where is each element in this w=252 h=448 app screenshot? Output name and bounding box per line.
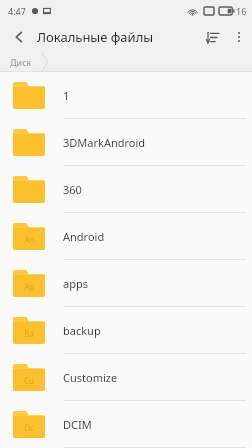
button[interactable]: 360 xyxy=(0,166,252,213)
staticText: 4:47 xyxy=(8,5,26,17)
button[interactable]: Sort xyxy=(198,23,226,51)
button[interactable]: An xyxy=(0,213,252,260)
staticText: 1 xyxy=(63,88,70,103)
button[interactable]: Диск xyxy=(0,52,48,72)
button[interactable]: Ap xyxy=(0,260,252,307)
staticText: Customize xyxy=(63,370,118,385)
button[interactable]: Ba xyxy=(0,307,252,354)
button[interactable]: Back xyxy=(6,24,32,50)
staticText: 360 xyxy=(63,182,82,197)
button[interactable]: Cu xyxy=(0,354,252,401)
staticText: Ba xyxy=(24,328,34,339)
staticText: backup xyxy=(63,323,101,338)
staticText: Локальные файлы xyxy=(37,28,154,46)
staticText: 16 xyxy=(236,5,247,17)
staticText: DCIM xyxy=(63,417,92,432)
button[interactable]: More options xyxy=(226,24,252,50)
button[interactable]: 1 xyxy=(0,72,252,119)
staticText: Ap xyxy=(24,281,35,292)
staticText: Cu xyxy=(24,375,34,386)
button[interactable]: 3DMarkAndroid xyxy=(0,119,252,166)
staticText: 3DMarkAndroid xyxy=(63,135,146,150)
staticText: apps xyxy=(63,276,88,291)
button[interactable]: Dc xyxy=(0,401,252,448)
staticText: Android xyxy=(63,229,105,244)
staticText: An xyxy=(24,234,35,245)
staticText: Диск xyxy=(10,56,32,68)
staticText: Dc xyxy=(24,422,34,433)
